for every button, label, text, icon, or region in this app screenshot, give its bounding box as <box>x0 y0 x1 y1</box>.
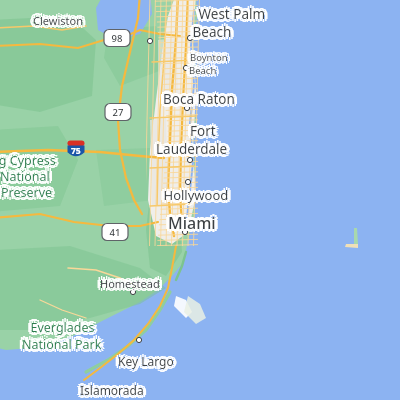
button[interactable]: Map of South Florida <box>0 0 400 400</box>
